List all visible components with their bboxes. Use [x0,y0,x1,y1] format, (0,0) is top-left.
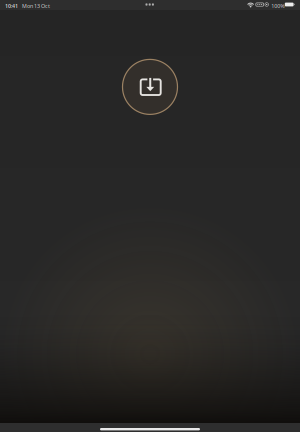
button[interactable]: Download [122,59,177,114]
staticText: 100% [271,2,284,9]
staticText: Mon 13 Oct [22,2,50,9]
staticText: 10:41 [5,2,18,9]
